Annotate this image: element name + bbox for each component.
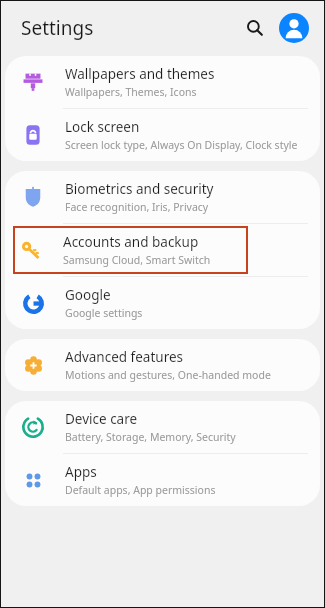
staticText: Wallpapers, Themes, Icons (65, 85, 197, 99)
button[interactable]: Biometrics and security (5, 171, 320, 223)
button[interactable]: Search (238, 11, 272, 45)
staticText: Lock screen (65, 118, 140, 136)
button[interactable]: Apps (5, 454, 320, 506)
button[interactable]: Advanced features (5, 339, 320, 391)
staticText: Samsung Cloud, Smart Switch (63, 253, 211, 267)
button[interactable]: Wallpapers and themes (5, 56, 320, 108)
staticText: Battery, Storage, Memory, Security (65, 430, 236, 444)
staticText: Wallpapers and themes (65, 65, 215, 83)
staticText: Google (65, 286, 111, 304)
button[interactable]: Accounts and backup (13, 226, 248, 274)
button[interactable]: Google (5, 277, 320, 329)
button[interactable]: Account (279, 13, 309, 43)
staticText: Device care (65, 410, 138, 428)
button[interactable]: Device care (5, 401, 320, 453)
staticText: Accounts and backup (63, 233, 199, 251)
staticText: Apps (65, 463, 97, 481)
staticText: Google settings (65, 306, 143, 320)
staticText: Motions and gestures, One-handed mode (65, 368, 271, 382)
staticText: Face recognition, Iris, Privacy (65, 200, 209, 214)
staticText: Biometrics and security (65, 180, 214, 198)
staticText: Settings (21, 15, 94, 41)
button[interactable]: Lock screen (5, 109, 320, 161)
staticText: Screen lock type, Always On Display, Clo… (65, 138, 298, 152)
staticText: Advanced features (65, 348, 184, 366)
staticText: Default apps, App permissions (65, 483, 216, 497)
